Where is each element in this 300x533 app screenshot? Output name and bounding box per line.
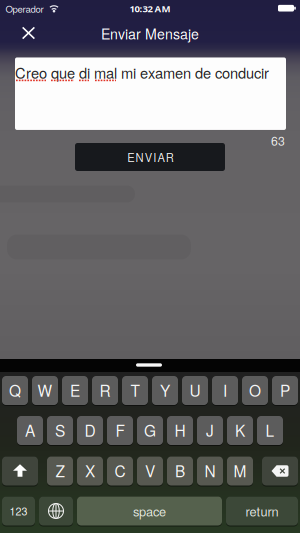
staticText: X: [85, 459, 95, 481]
staticText: A: [25, 419, 35, 441]
staticText: H: [174, 419, 185, 441]
staticText: U: [189, 379, 200, 401]
staticText: N: [136, 149, 144, 165]
staticText: R: [99, 379, 110, 401]
staticText: K: [235, 419, 245, 441]
staticText: A: [157, 149, 164, 165]
staticText: E: [127, 149, 134, 165]
staticText: T: [130, 379, 139, 401]
staticText: Y: [160, 379, 170, 401]
staticText: Q: [9, 379, 21, 401]
staticText: W: [37, 379, 52, 401]
staticText: S: [55, 419, 65, 441]
staticText: O: [249, 379, 261, 401]
staticText: J: [206, 419, 214, 441]
staticText: 123: [9, 503, 27, 519]
staticText: 10:32 AM: [129, 2, 170, 15]
staticText: L: [265, 419, 274, 441]
staticText: G: [144, 419, 156, 441]
staticText: Operador: [5, 2, 43, 15]
staticText: E: [70, 379, 80, 401]
staticText: C: [114, 459, 125, 481]
staticText: V: [145, 149, 152, 165]
staticText: Creo que di mal mi examen de conducir: [15, 62, 269, 83]
staticText: B: [175, 459, 185, 481]
staticText: I: [223, 379, 227, 401]
staticText: V: [145, 459, 155, 481]
staticText: F: [115, 419, 124, 441]
staticText: M: [233, 459, 246, 481]
staticText: P: [280, 379, 290, 401]
staticText: R: [166, 149, 174, 165]
staticText: return: [245, 502, 278, 520]
staticText: N: [204, 459, 215, 481]
staticText: Z: [55, 459, 64, 481]
staticText: space: [133, 502, 166, 520]
staticText: I: [153, 149, 156, 165]
staticText: D: [84, 419, 95, 441]
staticText: Enviar Mensaje: [101, 23, 199, 44]
staticText: 63: [271, 132, 285, 149]
